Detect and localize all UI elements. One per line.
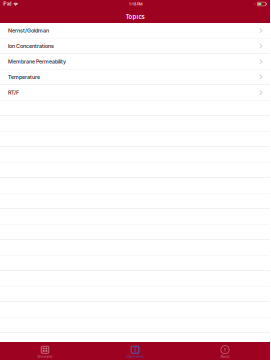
staticText: Nernst/Goldman — [8, 27, 49, 34]
button[interactable]: Nernst/Goldman — [0, 23, 270, 38]
staticText: RT/F — [8, 89, 19, 96]
staticText: iPad — [3, 1, 12, 7]
staticText: Ion Concentrations — [8, 43, 54, 49]
button[interactable]: Information — [90, 342, 180, 360]
staticText: Membrane Permeability — [8, 58, 66, 65]
staticText: 1:18 PM — [129, 2, 143, 6]
button[interactable]: Simulator — [0, 342, 90, 360]
button[interactable]: Temperature — [0, 69, 270, 85]
button[interactable]: About — [180, 342, 270, 360]
staticText: Simulator — [37, 355, 52, 358]
staticText: Information — [126, 355, 144, 358]
staticText: Temperature — [8, 74, 40, 80]
button[interactable]: Ion Concentrations — [0, 38, 270, 54]
staticText: About — [220, 355, 229, 358]
button[interactable]: RT/F — [0, 85, 270, 100]
button[interactable]: Membrane Permeability — [0, 54, 270, 69]
staticText: Topics — [125, 13, 144, 20]
